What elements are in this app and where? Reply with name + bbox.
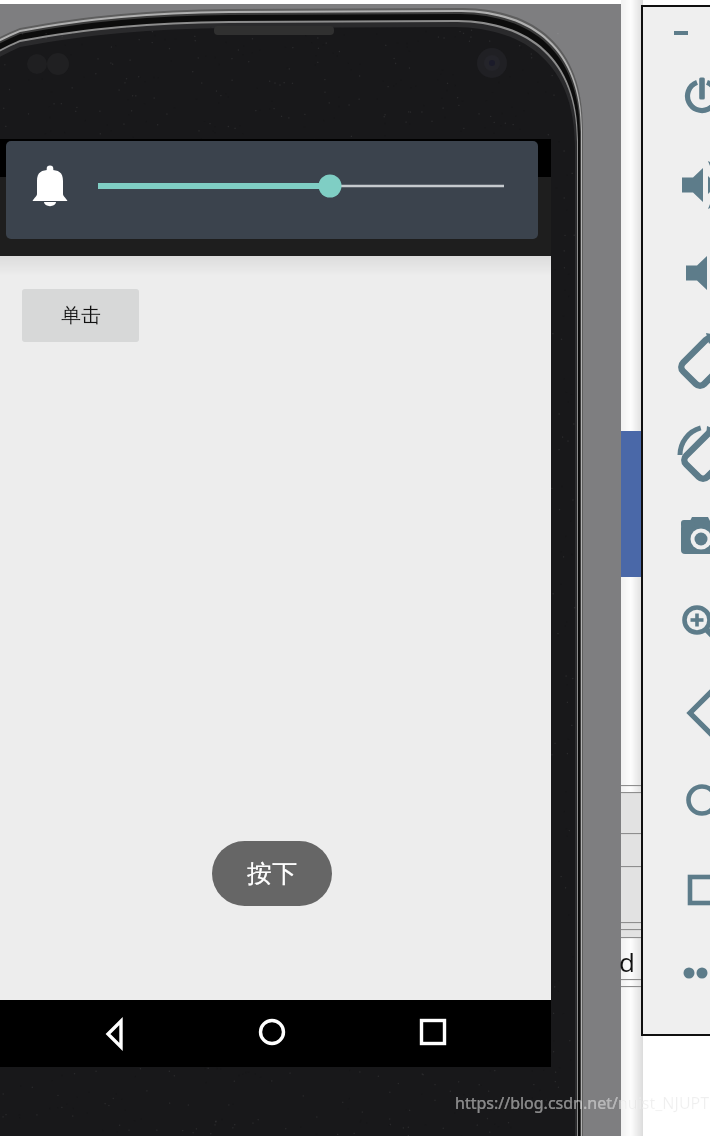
- button[interactable]: Take screenshot: [648, 509, 710, 565]
- button[interactable]: Notification volume: [6, 141, 538, 239]
- staticText: https://blog.csdn.net/nuist_NJUPT: [455, 1092, 710, 1114]
- button[interactable]: 按下: [212, 841, 332, 906]
- button[interactable]: Rotate left: [648, 334, 710, 390]
- staticText: d: [619, 944, 635, 979]
- button[interactable]: Power: [648, 68, 710, 124]
- button[interactable]: Recent apps: [648, 860, 710, 916]
- button[interactable]: Back: [648, 685, 710, 741]
- button[interactable]: Home: [648, 772, 710, 828]
- button[interactable]: Back: [80, 1002, 140, 1062]
- button[interactable]: Volume down: [648, 245, 710, 301]
- staticText: https://blog.csdn.net/nuist_NJUPT: [455, 1092, 710, 1114]
- staticText: 按下: [247, 858, 297, 889]
- button[interactable]: 单击: [22, 289, 139, 342]
- button[interactable]: Zoom: [648, 592, 710, 648]
- staticText: 单击: [61, 303, 101, 328]
- button[interactable]: Recent apps: [403, 1002, 463, 1062]
- button[interactable]: Volume up: [648, 157, 710, 213]
- button[interactable]: Rotate right: [648, 427, 710, 483]
- button[interactable]: Home: [242, 1002, 302, 1062]
- button[interactable]: More: [648, 945, 710, 1001]
- button[interactable]: Minimize: [648, 20, 710, 76]
